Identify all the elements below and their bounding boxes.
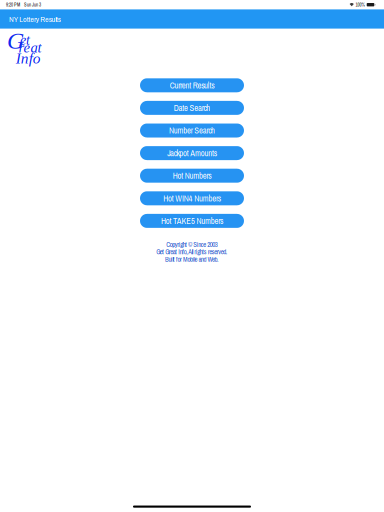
staticText: Sun Jun 3 [24, 2, 41, 8]
button[interactable]: Number Search [140, 123, 244, 137]
staticText: Date Search [174, 102, 210, 114]
staticText: Jackpot Amounts [167, 147, 217, 159]
staticText: Hot TAKE5 Numbers [161, 215, 223, 227]
staticText: Hot WIN4 Numbers [163, 193, 221, 204]
staticText: Info [16, 50, 41, 67]
staticText: Current Results [170, 80, 214, 91]
staticText: Hot Numbers [173, 170, 211, 181]
staticText: G [7, 27, 24, 54]
staticText: 9:20 PM [6, 2, 20, 8]
button[interactable]: Hot WIN4 Numbers [140, 191, 244, 205]
staticText: Number Search [169, 125, 215, 136]
staticText: NY Lottery Results [9, 14, 61, 24]
button[interactable]: Current Results [140, 78, 244, 92]
button[interactable]: Date Search [140, 101, 244, 115]
staticText: 100% [355, 2, 364, 8]
button[interactable]: Hot Numbers [140, 169, 244, 183]
staticText: et [20, 32, 30, 48]
button[interactable]: Jackpot Amounts [140, 146, 244, 160]
button[interactable]: Hot TAKE5 Numbers [140, 214, 244, 228]
staticText: reat [18, 39, 41, 56]
staticText: Copyright © Since 2003 [166, 240, 218, 249]
staticText: Built for Mobile and Web. [165, 255, 219, 264]
staticText: Get Great Info, All rights reserved. [156, 247, 228, 256]
